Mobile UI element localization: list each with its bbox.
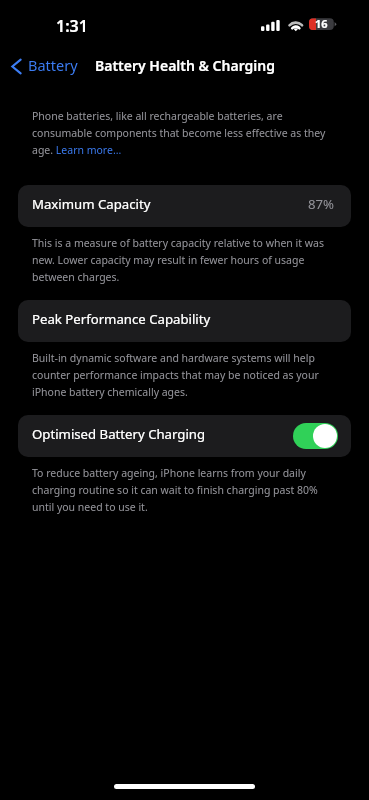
staticText: Battery Health & Charging xyxy=(95,56,275,75)
staticText: 87% xyxy=(308,195,335,213)
staticText: Built-in dynamic software and hardware s… xyxy=(32,351,333,399)
staticText: This is a measure of battery capacity re… xyxy=(32,236,333,284)
staticText: Battery xyxy=(28,55,78,75)
button[interactable]: Phone batteries, like all rechargeable b… xyxy=(32,109,333,157)
staticText: Peak Performance Capability xyxy=(32,310,211,328)
button[interactable]: Optimised Battery Charging xyxy=(293,423,338,449)
staticText: Maximum Capacity xyxy=(32,195,151,213)
staticText: Optimised Battery Charging xyxy=(32,425,206,443)
button[interactable]: Peak Performance Capability xyxy=(18,300,351,342)
staticText: 1:31 xyxy=(56,15,88,37)
button[interactable]: Optimised Battery Charging xyxy=(18,415,351,457)
staticText: 16 xyxy=(315,16,328,30)
button[interactable]: Back to Battery xyxy=(0,52,86,80)
staticText: To reduce battery ageing, iPhone learns … xyxy=(32,466,333,514)
button[interactable]: Maximum Capacity xyxy=(18,185,351,227)
